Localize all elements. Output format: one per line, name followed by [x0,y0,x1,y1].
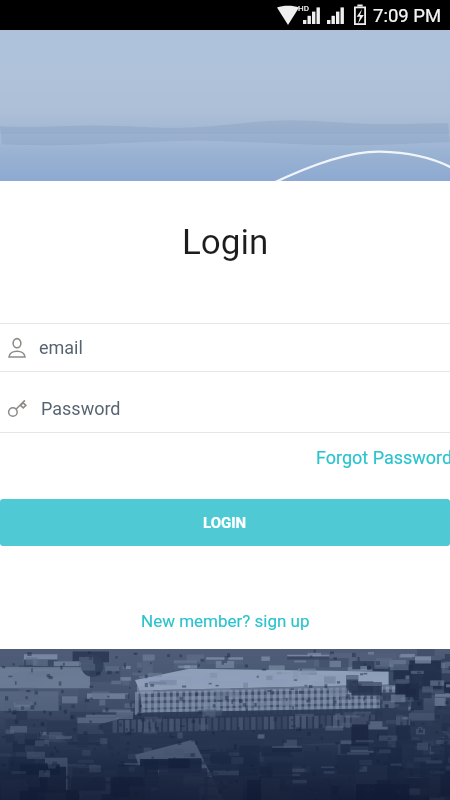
staticText: 7:09 PM [373,5,442,27]
staticText: email [39,337,83,358]
staticText: HD [298,4,309,13]
button[interactable]: LOGIN [0,499,450,546]
staticText: Forgot Password? [316,447,450,468]
staticText: Login [182,222,269,263]
button[interactable]: Forgot Password? [316,447,450,468]
button[interactable]: Password [0,372,450,432]
button[interactable]: New member? sign up [135,608,316,634]
staticText: Password [41,398,121,419]
staticText: LOGIN [203,514,247,532]
staticText: New member? sign up [141,611,310,631]
button[interactable]: email [0,324,450,371]
